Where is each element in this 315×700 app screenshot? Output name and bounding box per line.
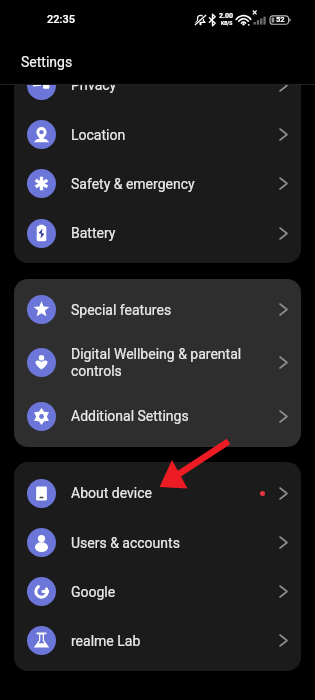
button[interactable]: Battery <box>14 208 301 258</box>
staticText: Users & accounts <box>71 535 279 551</box>
staticText: Google <box>71 584 279 600</box>
button[interactable]: Additional Settings <box>14 391 301 441</box>
staticText: 52 <box>276 15 285 24</box>
staticText: realme Lab <box>71 633 279 649</box>
staticText: 2.00 <box>219 12 234 20</box>
staticText: About device <box>71 485 260 501</box>
button[interactable]: Google <box>14 567 301 616</box>
staticText: Safety & emergency <box>71 176 279 192</box>
button[interactable]: Safety & emergency <box>14 159 301 208</box>
staticText: Special features <box>71 302 279 318</box>
staticText: 22:35 <box>47 13 75 26</box>
button[interactable]: Privacy <box>14 60 301 110</box>
button[interactable]: realme Lab <box>14 616 301 665</box>
staticText: Location <box>71 127 279 143</box>
button[interactable]: About device <box>14 468 301 518</box>
button[interactable]: Digital Wellbeing & parental controls <box>14 334 301 391</box>
staticText: Additional Settings <box>71 408 279 424</box>
staticText: Privacy <box>71 77 279 93</box>
staticText: KB/S <box>221 20 233 26</box>
staticText: Settings <box>21 54 73 70</box>
button[interactable]: Location <box>14 110 301 159</box>
button[interactable]: Users & accounts <box>14 518 301 567</box>
button[interactable]: Special features <box>14 285 301 334</box>
staticText: Battery <box>71 225 279 241</box>
staticText: Digital Wellbeing & parental controls <box>71 346 279 380</box>
